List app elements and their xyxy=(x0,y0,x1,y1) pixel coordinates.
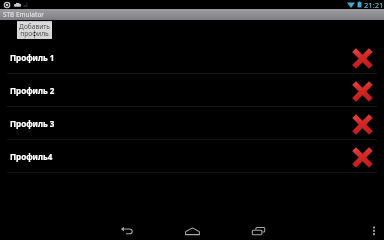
staticText: Профиль 3 xyxy=(10,118,55,129)
button[interactable]: Recent apps xyxy=(236,215,280,240)
staticText: STB Emulator xyxy=(3,10,45,19)
button[interactable]: Home xyxy=(170,215,214,240)
button[interactable]: Delete Профиль4 xyxy=(352,147,373,168)
button[interactable]: Delete Профиль 3 xyxy=(352,114,373,135)
button[interactable]: Добавить профиль xyxy=(17,21,52,39)
button[interactable]: Back xyxy=(105,215,149,240)
staticText: 21:21 xyxy=(364,0,384,9)
button[interactable]: Профиль4 xyxy=(0,140,384,173)
staticText: Добавить профиль xyxy=(19,22,50,38)
staticText: Профиль 1 xyxy=(10,52,55,63)
button[interactable]: More options xyxy=(366,215,382,240)
button[interactable]: Профиль 3 xyxy=(0,107,384,140)
staticText: Профиль4 xyxy=(10,151,53,162)
button[interactable]: Delete Профиль 2 xyxy=(352,81,373,102)
staticText: Профиль 2 xyxy=(10,85,55,96)
button[interactable]: Профиль 2 xyxy=(0,74,384,107)
button[interactable]: Delete Профиль 1 xyxy=(352,48,373,69)
button[interactable]: Профиль 1 xyxy=(0,41,384,74)
